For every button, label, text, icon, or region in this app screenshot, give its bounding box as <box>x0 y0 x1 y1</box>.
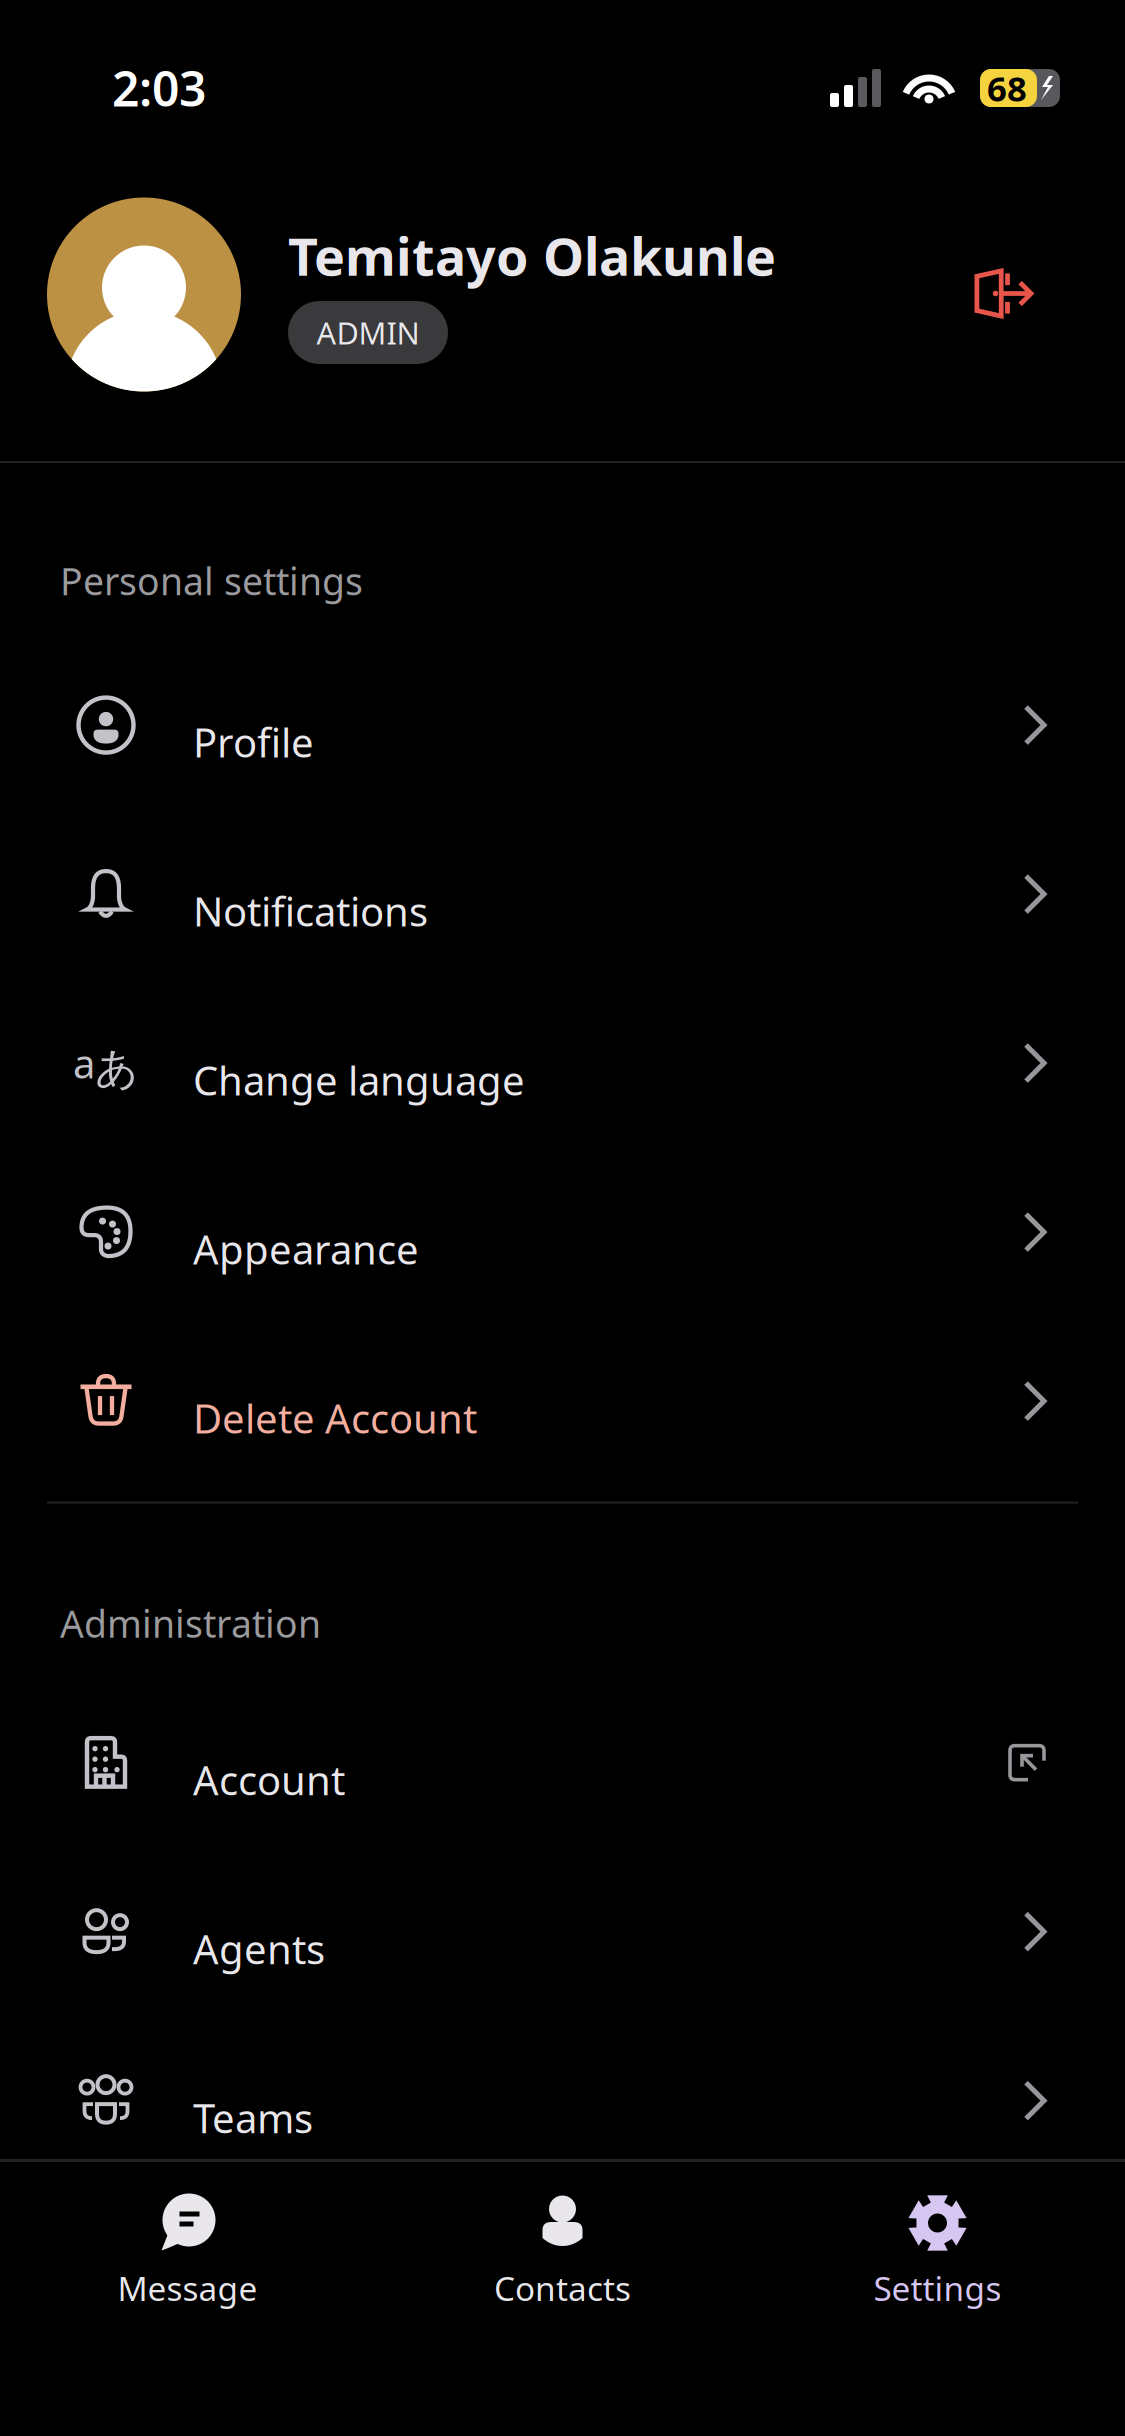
staticText: Account <box>193 1753 345 1806</box>
button[interactable]: Delete Account <box>0 1317 1125 1486</box>
staticText: Temitayo Olakunle <box>288 221 776 290</box>
button[interactable]: Teams <box>0 2016 1125 2185</box>
staticText: Notifications <box>193 884 428 938</box>
staticText: あ <box>95 1042 139 1095</box>
staticText: Settings <box>873 2266 1001 2310</box>
staticText: Teams <box>193 2091 313 2144</box>
button[interactable]: Account <box>0 1678 1125 1847</box>
button[interactable]: Profile <box>0 641 1125 810</box>
staticText: 68 <box>987 65 1027 111</box>
staticText: Agents <box>193 1922 325 1975</box>
staticText: Appearance <box>193 1222 419 1276</box>
button[interactable]: Message <box>0 2188 375 2310</box>
button[interactable]: Log out <box>952 245 1058 341</box>
button[interactable]: Agents <box>0 1847 1125 2016</box>
staticText: Message <box>117 2266 257 2310</box>
staticText: Personal settings <box>60 556 363 606</box>
staticText: Change language <box>193 1053 525 1107</box>
button[interactable]: Settings <box>750 2188 1125 2310</box>
staticText: a <box>73 1036 95 1090</box>
staticText: 2:03 <box>112 56 206 120</box>
staticText: Profile <box>193 715 314 769</box>
staticText: Contacts <box>494 2266 631 2310</box>
staticText: ADMIN <box>316 312 419 353</box>
button[interactable]: a <box>0 979 1125 1148</box>
button[interactable]: Contacts <box>375 2188 750 2310</box>
staticText: Administration <box>60 1599 321 1648</box>
staticText: Delete Account <box>193 1391 477 1445</box>
button[interactable]: Notifications <box>0 810 1125 979</box>
button[interactable]: Appearance <box>0 1148 1125 1317</box>
